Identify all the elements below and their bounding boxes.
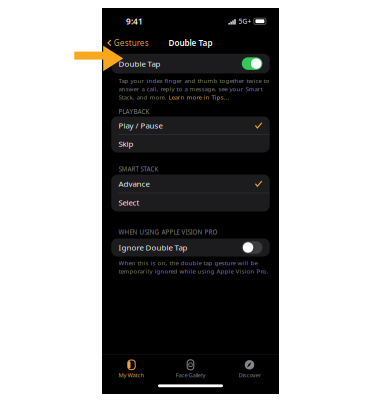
staticText: Play / Pause <box>119 120 163 131</box>
staticText: When this is on, the double tap gesture … <box>119 259 269 275</box>
staticText: Select <box>119 197 140 208</box>
staticText: Double Tap <box>168 37 212 48</box>
button[interactable]: Double Tap <box>111 54 270 73</box>
button[interactable]: Advance <box>111 174 270 193</box>
button[interactable]: Discover <box>220 356 279 382</box>
staticText: Ignore Double Tap <box>119 242 188 253</box>
button[interactable]: My Watch <box>102 356 161 382</box>
staticText: PLAYBACK <box>119 107 150 116</box>
button[interactable]: Face Gallery <box>161 356 220 382</box>
staticText: WHEN USING APPLE VISION PRO <box>119 228 218 236</box>
staticText: Gestures <box>114 37 149 48</box>
staticText: Advance <box>119 178 150 189</box>
button[interactable]: Skip <box>111 135 270 153</box>
button[interactable]: Gestures <box>102 35 154 51</box>
staticText: 5G+ <box>239 17 252 26</box>
staticText: 9:41 <box>126 16 143 27</box>
staticText: Face Gallery <box>175 371 205 379</box>
button[interactable]: Ignore Double Tap <box>111 238 270 256</box>
staticText: Skip <box>119 138 134 149</box>
staticText: Discover <box>238 371 260 379</box>
staticText: Tap your index finger and thumb together… <box>119 77 270 101</box>
button[interactable]: Play / Pause <box>111 116 270 134</box>
staticText: My Watch <box>118 371 144 379</box>
button[interactable]: Select <box>111 193 270 211</box>
staticText: SMART STACK <box>119 165 159 173</box>
staticText: Double Tap <box>119 58 161 69</box>
